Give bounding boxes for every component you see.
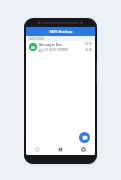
staticText: 12/07/2020	[28, 37, 44, 41]
button[interactable]: Messages	[49, 144, 72, 155]
staticText: SMS Backup	[49, 29, 73, 34]
button[interactable]: M	[26, 41, 95, 53]
staticText: +91 8240 1080801	[43, 48, 69, 52]
button[interactable]: Backup	[26, 144, 49, 155]
staticText: 36 KB	[85, 48, 92, 52]
staticText: M	[31, 45, 35, 50]
button[interactable]: Compose new message	[79, 132, 90, 143]
button[interactable]: 12/07/2020	[26, 36, 95, 41]
staticText: Messages Box	[39, 42, 62, 47]
button[interactable]: Settings	[72, 144, 95, 155]
staticText: 18:19	[84, 42, 92, 46]
